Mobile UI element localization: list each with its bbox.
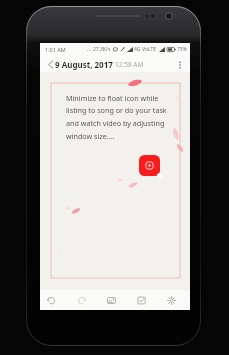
- button[interactable]: Undo: [42, 291, 60, 309]
- staticText: 9 August, 2017: [55, 59, 113, 70]
- staticText: VoLTE: [142, 46, 157, 53]
- button[interactable]: Redo: [72, 291, 90, 309]
- staticText: 12:58 AM: [115, 60, 144, 69]
- staticText: ...: [87, 46, 92, 53]
- staticText: 1:01 AM: [45, 46, 66, 53]
- staticText: 27.3K/s: [93, 46, 111, 53]
- staticText: Minimize to float icon while listing to …: [66, 93, 167, 141]
- button[interactable]: Insert image: [102, 291, 120, 309]
- staticText: 4G: [134, 46, 141, 53]
- button[interactable]: Checklist: [132, 291, 150, 309]
- button[interactable]: Resize: [157, 173, 162, 178]
- button[interactable]: Back: [40, 55, 55, 72]
- button[interactable]: Theme: [162, 291, 180, 309]
- button[interactable]: Play floating video: [139, 155, 160, 176]
- staticText: 75%: [177, 46, 187, 53]
- button[interactable]: More options: [172, 55, 190, 72]
